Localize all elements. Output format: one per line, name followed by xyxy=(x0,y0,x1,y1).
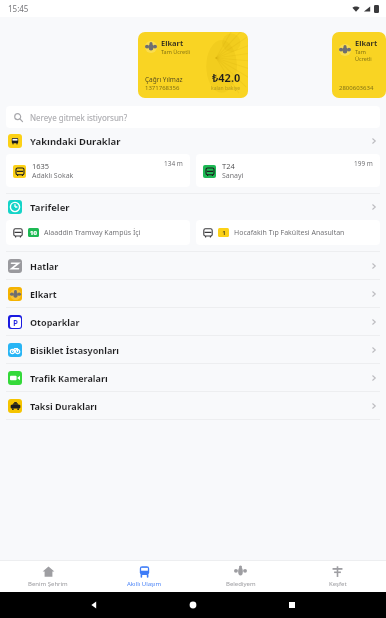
staticText: 1635 xyxy=(32,161,50,171)
staticText: Hocafakih Tıp Fakültesi Anasultan xyxy=(234,228,345,238)
staticText: T24 xyxy=(222,161,235,171)
staticText: Akıllı Ulaşım xyxy=(127,580,162,588)
staticText: 1 xyxy=(222,229,226,237)
staticText: Tam Ücretli xyxy=(161,48,191,55)
staticText: Benim Şehrim xyxy=(28,580,68,588)
other: Recents xyxy=(287,600,297,610)
staticText: Elkart xyxy=(30,288,57,300)
button[interactable]: P xyxy=(0,308,386,335)
staticText: Elkart xyxy=(355,38,378,48)
staticText: Otoparklar xyxy=(30,316,80,328)
staticText: 10 xyxy=(30,229,37,237)
button[interactable]: Taksi Durakları xyxy=(0,392,386,419)
staticText: Belediyem xyxy=(226,580,256,588)
button[interactable]: Yakındaki Duraklar xyxy=(0,128,386,154)
staticText: P xyxy=(13,317,18,328)
button[interactable]: Nereye gitmek istiyorsun? xyxy=(6,106,380,128)
staticText: kalan bakiye xyxy=(211,85,241,92)
other: Home xyxy=(188,600,198,610)
staticText: Hatlar xyxy=(30,260,59,272)
button[interactable]: Bisiklet İstasyonları xyxy=(0,336,386,363)
staticText: Adaklı Sokak xyxy=(32,171,74,181)
staticText: 1371768356 xyxy=(145,84,180,92)
staticText: Trafik Kameraları xyxy=(30,372,108,384)
staticText: Tam Ücretli xyxy=(355,48,379,62)
button[interactable]: 1635 xyxy=(6,154,190,187)
staticText: 2800603634 xyxy=(339,84,374,92)
staticText: ₺42.0 xyxy=(212,70,241,85)
staticText: Elkart xyxy=(161,38,184,48)
staticText: Tarifeler xyxy=(30,201,70,214)
staticText: 15:45 xyxy=(8,3,29,14)
other: Back xyxy=(89,600,99,610)
other: Benim Şehrim xyxy=(42,565,55,578)
button[interactable]: Elkart xyxy=(332,32,386,98)
other: Keşfet xyxy=(331,565,344,578)
button[interactable]: Elkart xyxy=(0,280,386,307)
staticText: Taksi Durakları xyxy=(30,400,98,412)
staticText: 134 m xyxy=(164,159,183,168)
button[interactable]: Hatlar xyxy=(0,252,386,279)
staticText: Nereye gitmek istiyorsun? xyxy=(30,112,128,123)
button[interactable]: Keşfet xyxy=(289,561,386,592)
staticText: Çağrı Yılmaz xyxy=(145,75,183,84)
button[interactable]: Belediyem xyxy=(192,561,289,592)
staticText: Yakındaki Duraklar xyxy=(30,135,121,148)
button[interactable]: T24 xyxy=(196,154,380,187)
staticText: Sanayi xyxy=(222,171,244,181)
button[interactable]: 1 xyxy=(196,220,380,245)
button[interactable]: 10 xyxy=(6,220,190,245)
staticText: Keşfet xyxy=(329,580,347,588)
other: Akıllı Ulaşım xyxy=(138,565,151,578)
button[interactable]: Akıllı Ulaşım xyxy=(96,561,192,592)
staticText: Bisiklet İstasyonları xyxy=(30,344,120,356)
staticText: Alaaddin Tramvay Kampüs İçi xyxy=(44,228,141,238)
button[interactable]: Benim Şehrim xyxy=(0,561,96,592)
button[interactable]: Elkart xyxy=(138,32,248,98)
button[interactable]: Trafik Kameraları xyxy=(0,364,386,391)
button[interactable]: Tarifeler xyxy=(0,194,386,220)
staticText: 199 m xyxy=(354,159,373,168)
other: Belediyem xyxy=(234,565,247,578)
